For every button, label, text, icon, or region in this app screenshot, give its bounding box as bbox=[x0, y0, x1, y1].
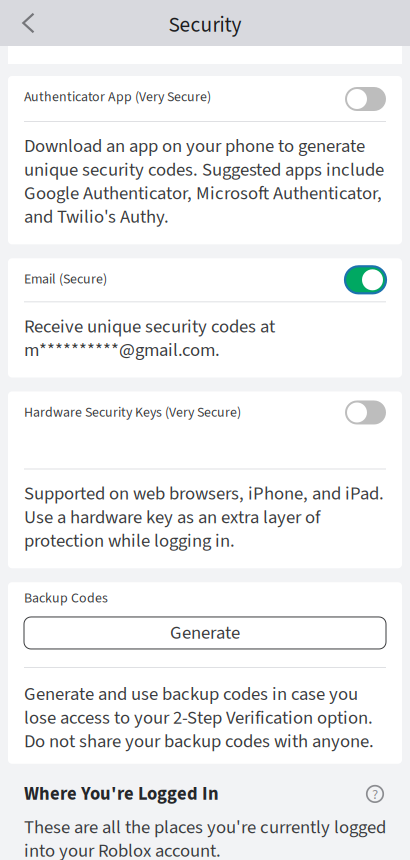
staticText: Authenticator App (Very Secure) bbox=[24, 87, 211, 107]
button[interactable]: Help bbox=[366, 785, 386, 803]
staticText: Hardware Security Keys (Very Secure) bbox=[24, 402, 241, 422]
button[interactable]: Authenticator App, off bbox=[345, 76, 386, 111]
staticText: Security bbox=[168, 10, 241, 40]
staticText: Generate and use backup codes in case yo… bbox=[24, 681, 374, 755]
button[interactable]: Hardware Security Keys, off bbox=[345, 391, 386, 424]
staticText: Supported on web browsers, iPhone, and i… bbox=[24, 480, 384, 554]
staticText: Backup Codes bbox=[24, 588, 108, 608]
staticText: Email (Secure) bbox=[24, 269, 107, 289]
staticText: Download an app on your phone to generat… bbox=[24, 133, 384, 230]
button[interactable]: Email, on bbox=[345, 258, 386, 293]
staticText: Receive unique security codes at m******… bbox=[24, 313, 275, 363]
staticText: ? bbox=[372, 784, 378, 805]
staticText: Where You're Logged In bbox=[24, 781, 219, 807]
button[interactable]: Back bbox=[0, 0, 49, 46]
staticText: Generate bbox=[170, 620, 240, 646]
staticText: These are all the places you're currentl… bbox=[24, 814, 386, 860]
button[interactable]: Generate bbox=[8, 608, 402, 649]
